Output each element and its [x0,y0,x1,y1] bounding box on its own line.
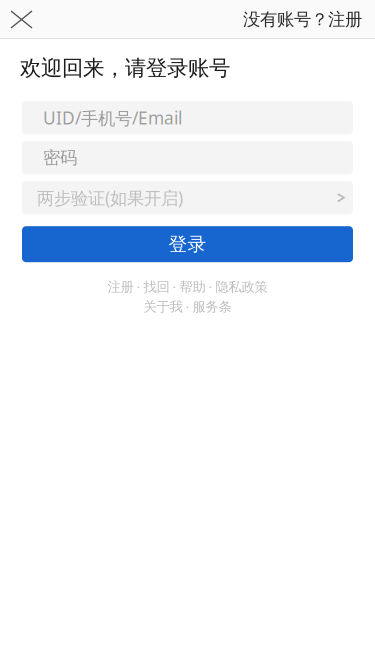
staticText: 登录 [168,233,206,256]
button[interactable]: 没有账号？注册 [243,0,375,39]
staticText: · [208,278,212,296]
button[interactable]: 注册 [107,279,133,295]
staticText: · [136,278,140,296]
staticText: 欢迎回来，请登录账号 [20,55,230,81]
staticText: · [185,298,189,316]
staticText: 没有账号？注册 [243,9,362,30]
staticText: 隐私政策 [215,279,267,295]
button[interactable]: Close [0,0,48,39]
button[interactable]: 关于我 [143,299,182,315]
staticText: 关于我 [143,299,182,315]
staticText: 服务条 [192,299,231,315]
button[interactable]: 隐私政策 [215,279,267,295]
button[interactable]: 登录 [22,226,353,262]
button[interactable]: 两步验证(如果开启) [22,181,353,214]
button[interactable]: 找回 [143,279,169,295]
staticText: 找回 [143,279,169,295]
staticText: 两步验证(如果开启) [37,186,183,209]
button[interactable]: 帮助 [179,279,205,295]
staticText: UID/手机号/Email [43,106,182,129]
staticText: 注册 [107,279,133,295]
staticText: · [172,278,176,296]
staticText: 密码 [43,147,77,168]
button[interactable]: 服务条 [192,299,231,315]
staticText: 帮助 [179,279,205,295]
